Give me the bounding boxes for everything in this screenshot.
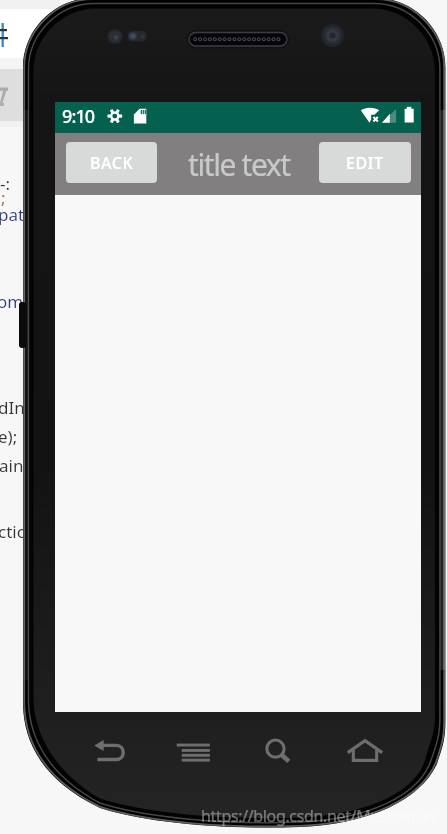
button[interactable]: BACK — [66, 142, 157, 183]
staticText: -: — [0, 172, 11, 195]
staticText: dIns — [0, 396, 33, 419]
staticText: title text — [188, 144, 290, 185]
staticText: ; — [1, 186, 6, 209]
staticText: EDIT — [346, 152, 384, 174]
button[interactable]: EDIT — [319, 142, 411, 183]
staticText: BACK — [90, 152, 134, 174]
button[interactable]: Menu — [176, 731, 212, 767]
button[interactable]: Back — [91, 731, 127, 767]
staticText: 9:10 — [62, 104, 95, 129]
staticText: https://blog.csdn.net/Mushan_vv — [201, 805, 438, 827]
staticText: pat — [0, 203, 25, 226]
staticText: e); — [0, 425, 18, 448]
button[interactable]: Search — [260, 731, 296, 767]
staticText: ctio — [0, 520, 27, 543]
button[interactable]: Home — [347, 731, 383, 767]
staticText: ain — [0, 454, 24, 477]
staticText: omp — [0, 290, 34, 313]
